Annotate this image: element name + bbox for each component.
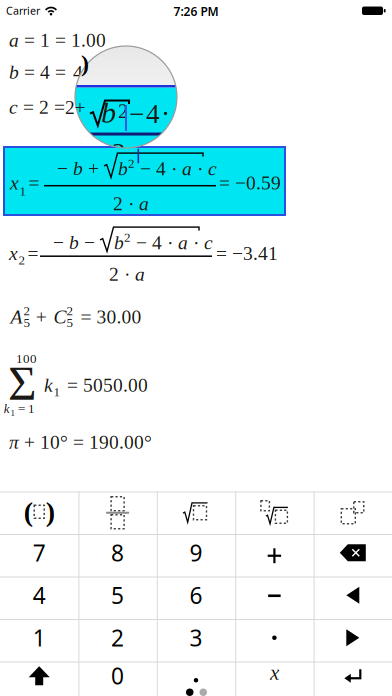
button[interactable]: Parentheses xyxy=(0,491,78,534)
staticText: 4 xyxy=(146,99,160,129)
staticText: = xyxy=(27,242,38,264)
staticText: C xyxy=(54,306,67,328)
staticText: a = 1 = 1.00 xyxy=(9,30,106,51)
staticText: Carrier xyxy=(6,3,40,18)
staticText: c = 2 = xyxy=(9,97,70,118)
staticText: b xyxy=(118,158,128,179)
staticText: b xyxy=(114,232,124,253)
staticText: 7:26 PM xyxy=(173,3,218,19)
staticText: 2 xyxy=(23,304,30,318)
staticText: = 5050.00 xyxy=(67,374,148,396)
staticText: = −0.59 xyxy=(219,172,281,194)
button[interactable]: 8 xyxy=(78,534,157,576)
staticText: 100 xyxy=(16,351,37,366)
staticText: 6 xyxy=(189,580,202,610)
staticText: + xyxy=(36,306,47,328)
button[interactable] xyxy=(235,619,314,661)
staticText: 5 xyxy=(66,315,73,330)
staticText: − b + xyxy=(57,158,104,179)
staticText: 2 xyxy=(66,304,73,318)
staticText: · xyxy=(192,158,208,179)
button[interactable]: Move right xyxy=(314,619,392,661)
staticText: 4.00 xyxy=(73,62,108,83)
staticText: 1 xyxy=(53,385,60,399)
staticText: = 30.00 xyxy=(80,306,141,328)
button[interactable]: Exponent xyxy=(314,491,392,534)
staticText: 3 xyxy=(189,623,202,653)
staticText: 5 xyxy=(111,580,124,610)
staticText: 2 xyxy=(128,156,135,170)
staticText: π + 10° = 190.00° xyxy=(9,432,152,453)
staticText: = 1 xyxy=(18,401,35,416)
staticText: c xyxy=(204,232,213,253)
staticText: 8 xyxy=(111,538,124,568)
staticText: 2 xyxy=(112,138,126,168)
button[interactable]: Shift xyxy=(0,661,78,696)
staticText: ) xyxy=(46,496,55,527)
staticText: · xyxy=(188,232,204,253)
staticText: 9 xyxy=(189,538,202,568)
staticText: A xyxy=(10,306,22,328)
staticText: + xyxy=(74,97,85,118)
button[interactable] xyxy=(235,534,314,576)
button[interactable]: Return xyxy=(314,661,392,696)
button[interactable]: Move left xyxy=(314,576,392,619)
staticText: ( xyxy=(24,496,33,527)
button[interactable]: Delete xyxy=(314,534,392,576)
button[interactable]: 6 xyxy=(157,576,235,619)
button[interactable] xyxy=(235,576,314,619)
button[interactable]: 1 xyxy=(0,619,78,661)
button[interactable]: Nth root xyxy=(235,491,314,534)
staticText: ) xyxy=(81,50,89,77)
button[interactable]: Square root xyxy=(157,491,235,534)
button[interactable]: 5 xyxy=(78,576,157,619)
button[interactable] xyxy=(157,661,235,696)
staticText: 1 xyxy=(19,184,26,198)
button[interactable]: Fraction xyxy=(78,491,157,534)
staticText: c xyxy=(208,158,217,179)
staticText: · xyxy=(161,99,170,129)
staticText: b xyxy=(101,96,116,129)
button[interactable]: 7 xyxy=(0,534,78,576)
staticText: 2 xyxy=(18,253,25,267)
button[interactable]: 0 xyxy=(78,661,157,696)
staticText: x xyxy=(9,242,18,264)
staticText: a xyxy=(178,232,188,253)
staticText: 5 xyxy=(23,315,30,330)
staticText: 2 xyxy=(118,100,128,122)
staticText: = xyxy=(28,172,39,194)
button[interactable]: 2 xyxy=(78,619,157,661)
staticText: 4 xyxy=(33,580,46,610)
button[interactable]: x xyxy=(235,661,314,696)
staticText: − xyxy=(129,99,144,129)
staticText: a xyxy=(182,158,192,179)
staticText: − 4 · xyxy=(135,158,182,179)
staticText: 2 xyxy=(124,230,131,244)
button[interactable]: 9 xyxy=(157,534,235,576)
staticText: b = 4 = xyxy=(9,62,71,83)
staticText: 2 xyxy=(111,623,124,653)
staticText: − b − xyxy=(53,232,100,253)
staticText: Σ xyxy=(8,356,37,410)
button[interactable]: 4 xyxy=(0,576,78,619)
staticText: x xyxy=(270,661,279,684)
staticText: = −3.41 xyxy=(216,242,278,264)
staticText: 2 xyxy=(65,97,75,118)
staticText: k xyxy=(44,374,53,396)
staticText: k xyxy=(4,401,10,416)
staticText: 0 xyxy=(111,661,124,691)
staticText: 1 xyxy=(10,408,15,418)
staticText: x xyxy=(10,172,19,194)
staticText: 2 · a xyxy=(109,264,145,285)
staticText: 7 xyxy=(33,538,46,568)
staticText: 2 · a xyxy=(113,193,149,214)
button[interactable]: 3 xyxy=(157,619,235,661)
staticText: − 4 · xyxy=(131,232,178,253)
staticText: 1 xyxy=(33,623,46,653)
